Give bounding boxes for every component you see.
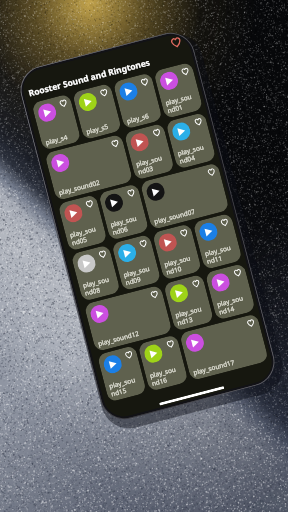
button[interactable]: play_sou nd15 <box>97 345 147 402</box>
staticText: play_sound02 <box>58 178 101 197</box>
staticText: play_sound17 <box>192 357 236 377</box>
staticText: play_sou nd13 <box>174 304 205 327</box>
staticText: play_sou nd05 <box>69 224 99 247</box>
button[interactable]: play_sou nd08 <box>71 244 121 302</box>
staticText: play_s6 <box>126 111 150 126</box>
button[interactable]: play_sou nd05 <box>57 194 108 251</box>
button[interactable]: play_s5 <box>72 83 122 140</box>
staticText: play_sou nd09 <box>122 264 153 287</box>
button[interactable]: play_sou nd11 <box>193 213 243 270</box>
staticText: play_sou nd10 <box>163 253 193 277</box>
staticText: play_sou nd03 <box>135 153 165 176</box>
button[interactable]: play_sound07 <box>140 162 230 230</box>
button[interactable]: play_sou nd14 <box>205 263 256 320</box>
staticText: Rooster Sound and Ringtones <box>27 56 151 99</box>
staticText: play_s4 <box>44 132 69 147</box>
button[interactable]: Favorites <box>169 36 183 49</box>
button[interactable]: play_sou nd13 <box>163 274 214 331</box>
staticText: play_sou nd08 <box>82 274 112 298</box>
staticText: play_sou nd06 <box>109 214 140 237</box>
button[interactable]: play_sou nd09 <box>111 234 161 291</box>
button[interactable]: play_sou nd10 <box>152 223 202 280</box>
staticText: play_sou nd04 <box>177 142 207 166</box>
staticText: play_sound07 <box>153 206 197 226</box>
staticText: play_sou nd15 <box>108 375 138 398</box>
staticText: play_sound12 <box>97 329 141 348</box>
button[interactable]: play_sou nd06 <box>98 183 149 241</box>
staticText: play_sou nd01 <box>164 92 195 115</box>
button[interactable]: play_sound17 <box>179 313 269 381</box>
staticText: play_sou nd16 <box>149 365 179 388</box>
button[interactable]: play_sou nd01 <box>153 62 203 119</box>
staticText: play_sou nd14 <box>216 293 246 317</box>
button[interactable]: play_sou nd04 <box>165 112 216 170</box>
button[interactable]: play_s4 <box>31 93 81 151</box>
button[interactable]: play_sound02 <box>44 134 133 201</box>
button[interactable]: play_s6 <box>113 72 163 129</box>
button[interactable]: play_sou nd03 <box>124 123 175 180</box>
staticText: play_s5 <box>85 122 110 136</box>
staticText: play_sou nd11 <box>204 243 234 266</box>
button[interactable]: play_sou nd16 <box>137 334 189 392</box>
button[interactable]: play_sound12 <box>84 285 173 352</box>
